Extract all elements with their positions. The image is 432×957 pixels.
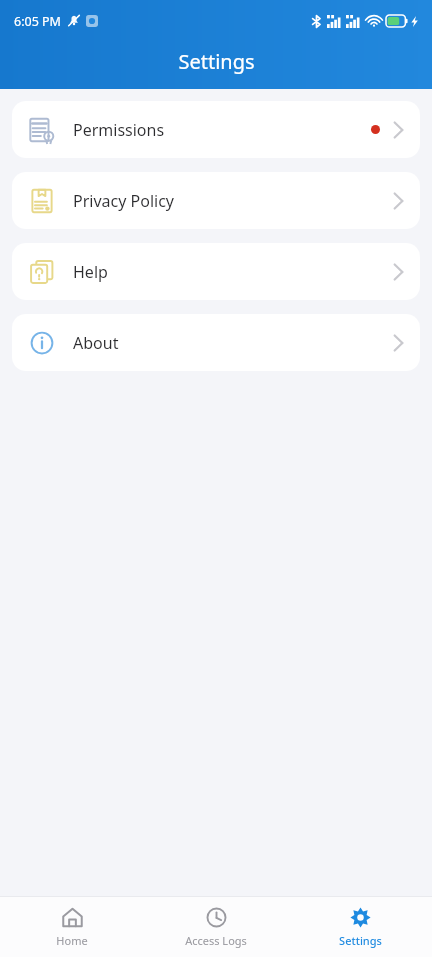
button[interactable]: Home [0, 897, 144, 957]
staticText: Privacy Policy [73, 190, 174, 212]
staticText: 6:05 PM [14, 13, 61, 30]
staticText: Access Logs [185, 933, 247, 948]
button[interactable]: Settings [288, 897, 432, 957]
staticText: About [73, 332, 119, 354]
button[interactable]: Permissions [12, 101, 420, 158]
button[interactable]: Access Logs [144, 897, 288, 957]
button[interactable]: Help [12, 243, 420, 300]
button[interactable]: About [12, 314, 420, 371]
button[interactable]: Privacy Policy [12, 172, 420, 229]
staticText: Settings [339, 933, 382, 948]
staticText: Home [56, 933, 88, 948]
staticText: Settings [178, 48, 255, 75]
staticText: Permissions [73, 119, 165, 141]
staticText: Help [73, 261, 108, 283]
